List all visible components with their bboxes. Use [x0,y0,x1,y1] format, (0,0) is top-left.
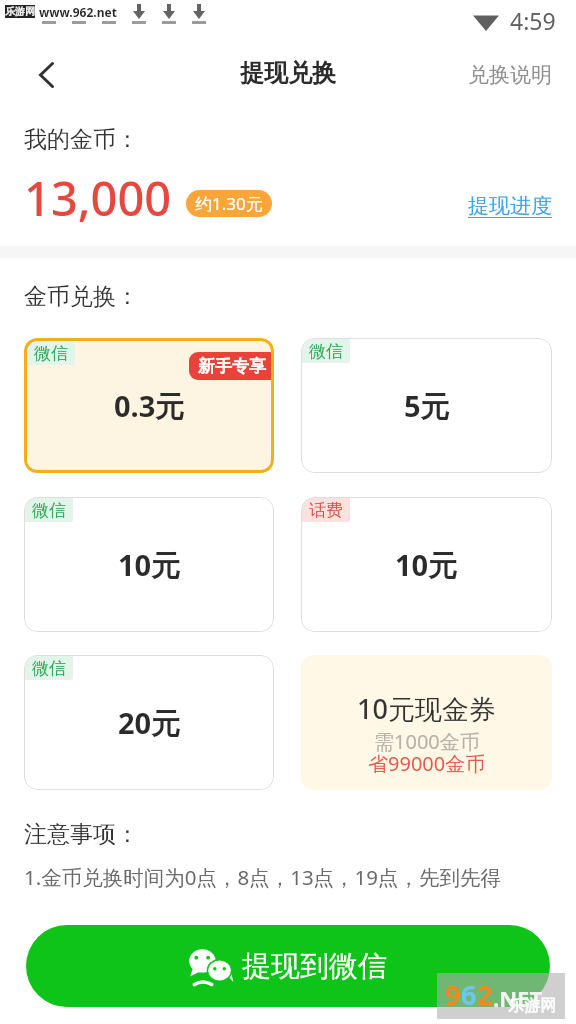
staticText: 新手专享 [198,356,266,377]
staticText: 提现兑换 [240,58,336,88]
button[interactable]: 微信 [24,655,274,790]
staticText: 微信 [34,343,68,364]
staticText: 4:59 [510,5,556,36]
staticText: www.962.net [39,4,117,19]
staticText: 话费 [309,500,343,521]
staticText: 1.金币兑换时间为0点，8点，13点，19点，先到先得 [24,863,502,891]
button[interactable]: 微信 [24,338,274,473]
staticText: 9 [445,976,461,1013]
button[interactable]: 微信 [301,338,552,473]
staticText: .NET [493,983,543,1013]
staticText: 约1.30元 [195,192,263,215]
button[interactable]: Back [0,40,93,110]
staticText: 乐游网 [5,5,35,18]
button[interactable]: 话费 [301,497,552,632]
button[interactable]: 微信 [24,497,274,632]
staticText: 10元现金券 [357,690,496,727]
staticText: 微信 [32,658,66,679]
staticText: 我的金币： [24,125,139,154]
staticText: 微信 [309,341,343,362]
staticText: 需1000金币 [374,728,480,755]
staticText: 注意事项： [24,820,139,849]
staticText: 省99000金币 [368,750,486,777]
staticText: 13,000 [24,166,172,222]
staticText: 2 [477,976,493,1013]
button[interactable]: 提现进度 [452,185,576,227]
button[interactable]: 10元现金券 [301,655,552,790]
staticText: 金币兑换： [24,282,139,311]
staticText: 10元 [118,545,181,585]
staticText: 微信 [32,500,66,521]
staticText: 20元 [118,703,181,743]
staticText: 兑换说明 [468,62,552,88]
button[interactable]: 兑换说明 [448,48,576,102]
staticText: 提现进度 [468,193,552,219]
staticText: 5元 [404,386,450,426]
staticText: 0.3元 [114,386,185,426]
staticText: 乐游网 [508,996,556,1016]
button[interactable]: 提现到微信 [26,925,550,1007]
staticText: 6 [461,976,477,1013]
staticText: 提现到微信 [242,948,387,985]
staticText: 10元 [395,545,458,585]
